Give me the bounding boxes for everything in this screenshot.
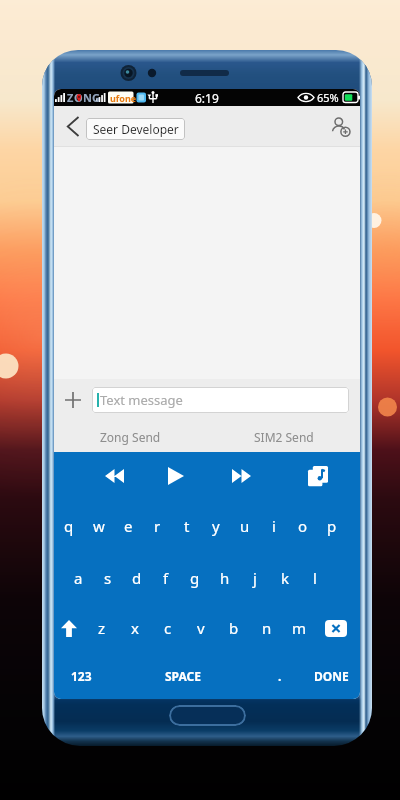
staticText: r [154, 516, 161, 536]
button[interactable]: q [54, 500, 84, 552]
staticText: v [197, 618, 205, 638]
button[interactable]: e [114, 500, 143, 552]
button[interactable]: j [240, 552, 270, 604]
button[interactable]: f [151, 552, 180, 604]
staticText: x [131, 618, 139, 638]
button[interactable]: i [259, 500, 288, 552]
button[interactable]: Attach [54, 381, 92, 419]
staticText: k [281, 568, 290, 588]
button[interactable]: k [270, 552, 300, 604]
staticText: g [190, 568, 200, 588]
button[interactable]: r [143, 500, 172, 552]
staticText: s [104, 568, 112, 588]
button[interactable]: b [217, 604, 250, 652]
staticText: NG [83, 90, 100, 105]
button[interactable]: s [93, 552, 122, 604]
button[interactable]: c [151, 604, 184, 652]
button[interactable]: Add contact [320, 107, 360, 147]
button[interactable]: Seer Developer [86, 118, 185, 140]
staticText: ufone [110, 92, 137, 104]
staticText: f [163, 568, 169, 588]
staticText: a [74, 568, 83, 588]
button[interactable]: d [122, 552, 151, 604]
staticText: t [184, 516, 190, 536]
button[interactable]: n [250, 604, 283, 652]
button[interactable]: h [210, 552, 240, 604]
button[interactable]: a [64, 552, 93, 604]
button[interactable]: y [201, 500, 230, 552]
button[interactable]: Music library [301, 459, 335, 493]
staticText: i [272, 516, 276, 536]
button[interactable]: l [300, 552, 330, 604]
button[interactable]: x [118, 604, 151, 652]
staticText: Zong Send [100, 429, 161, 445]
staticText: q [64, 516, 74, 536]
button[interactable]: SIM2 Send [207, 421, 360, 452]
button[interactable]: g [180, 552, 210, 604]
staticText: SPACE [165, 668, 201, 684]
button[interactable]: z [86, 604, 118, 652]
staticText: 123 [71, 668, 92, 684]
staticText: m [292, 618, 307, 638]
staticText: Z [67, 90, 74, 105]
staticText: SIM2 Send [254, 429, 314, 445]
staticText: e [124, 516, 133, 536]
staticText: o [298, 516, 308, 536]
staticText: 6:19 [195, 90, 219, 106]
staticText: O [74, 90, 83, 105]
button[interactable]: o [288, 500, 317, 552]
button[interactable]: Back [57, 106, 89, 147]
button[interactable]: Home [169, 705, 246, 726]
button[interactable]: SPACE [108, 652, 258, 699]
button[interactable]: t [172, 500, 201, 552]
staticText: n [262, 618, 272, 638]
button[interactable]: 123 [54, 652, 108, 699]
button[interactable]: DONE [302, 652, 360, 699]
staticText: DONE [314, 668, 349, 684]
staticText: j [253, 568, 257, 588]
button[interactable]: w [84, 500, 114, 552]
staticText: p [327, 516, 337, 536]
staticText: 65% [317, 90, 339, 105]
button[interactable]: Zong Send [54, 421, 207, 452]
button[interactable]: Rewind [97, 459, 131, 493]
staticText: h [220, 568, 230, 588]
button[interactable]: Backspace [319, 611, 353, 645]
staticText: b [229, 618, 239, 638]
button[interactable]: m [283, 604, 316, 652]
staticText: w [93, 516, 105, 536]
staticText: Seer Developer [93, 121, 179, 137]
staticText: z [98, 618, 106, 638]
button[interactable]: v [184, 604, 217, 652]
staticText: d [132, 568, 142, 588]
button[interactable]: Text message [92, 387, 349, 413]
button[interactable]: Forward [224, 459, 258, 493]
button[interactable]: Play [159, 459, 193, 493]
staticText: y [212, 516, 220, 536]
staticText: u [240, 516, 250, 536]
staticText: . [278, 668, 282, 684]
staticText: c [164, 618, 172, 638]
button[interactable]: u [230, 500, 259, 552]
button[interactable]: . [258, 652, 302, 699]
staticText: l [313, 568, 317, 588]
button[interactable]: p [317, 500, 346, 552]
button[interactable]: Shift [55, 614, 83, 642]
staticText: Text message [100, 391, 183, 409]
